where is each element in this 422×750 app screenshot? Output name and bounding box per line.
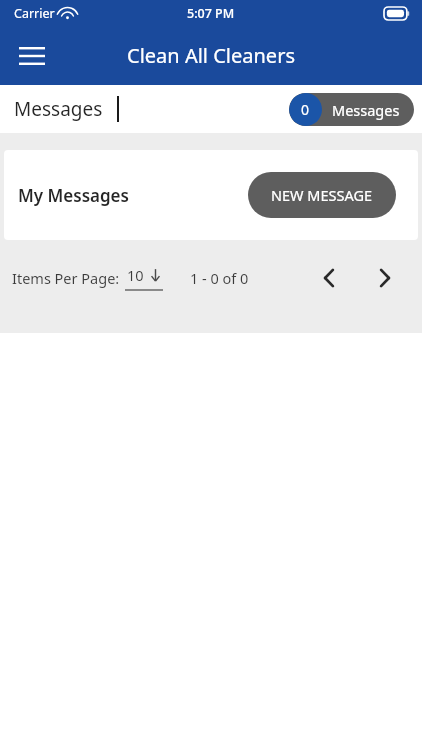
- button[interactable]: Previous page: [308, 258, 350, 298]
- button[interactable]: Next page: [364, 258, 406, 298]
- staticText: My Messages: [18, 184, 129, 207]
- button[interactable]: Open navigation menu: [8, 32, 56, 80]
- staticText: 1 - 0 of 0: [190, 268, 249, 288]
- staticText: Carrier: [14, 5, 55, 22]
- button[interactable]: NEW MESSAGE: [248, 172, 396, 218]
- staticText: Items Per Page:: [12, 268, 120, 288]
- staticText: Messages: [14, 96, 103, 122]
- staticText: Messages: [332, 100, 400, 120]
- button[interactable]: 10: [125, 265, 163, 291]
- staticText: NEW MESSAGE: [271, 185, 373, 205]
- button[interactable]: 0: [289, 93, 414, 126]
- staticText: 5:07 PM: [187, 5, 235, 22]
- staticText: 10: [127, 265, 144, 285]
- staticText: 0: [301, 100, 310, 119]
- staticText: Clean All Cleaners: [127, 42, 295, 69]
